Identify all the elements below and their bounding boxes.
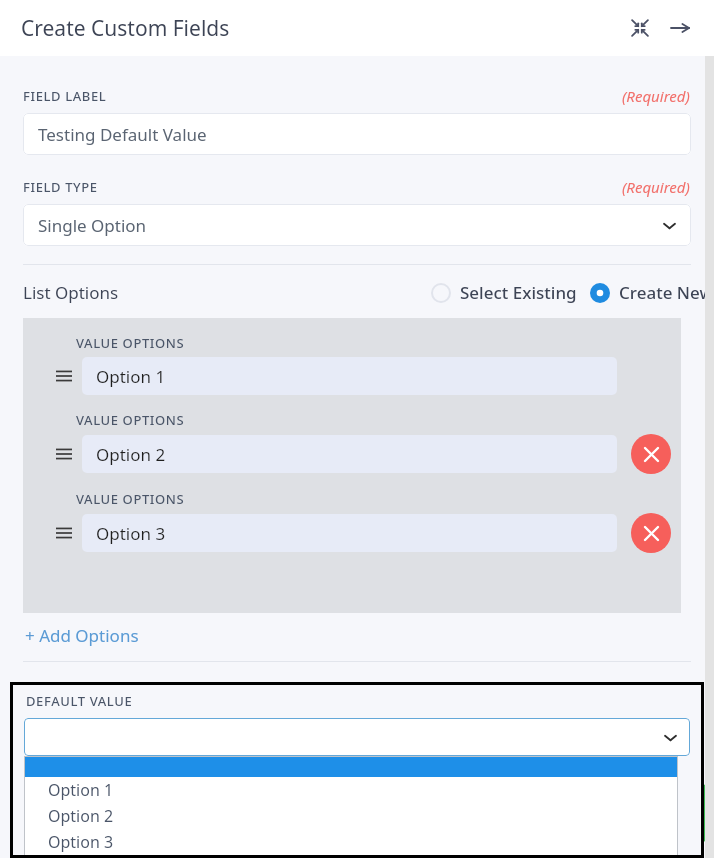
staticText: Option 1 <box>48 779 114 801</box>
staticText: Option 3 <box>96 522 166 545</box>
button[interactable]: Option 2 <box>82 435 617 473</box>
button[interactable]: Option 3 <box>24 829 678 855</box>
button[interactable]: Option 1 <box>24 777 678 803</box>
staticText: Option 2 <box>48 805 114 827</box>
staticText: Select Existing <box>460 281 577 304</box>
button[interactable]: Reorder <box>52 364 76 388</box>
staticText: VALUE OPTIONS <box>76 490 185 508</box>
button[interactable]: Single Option <box>23 204 691 246</box>
button[interactable]: Testing Default Value <box>23 113 691 155</box>
staticText: FIELD TYPE <box>23 178 98 196</box>
button[interactable]: Delete option <box>631 513 671 553</box>
staticText: Create New <box>619 281 714 304</box>
staticText: Create Custom Fields <box>21 14 230 43</box>
button[interactable]: Next <box>662 10 698 46</box>
staticText: VALUE OPTIONS <box>76 334 185 352</box>
button[interactable]: Chat support <box>658 781 714 845</box>
button[interactable]: Option 2 <box>24 803 678 829</box>
staticText: Option 1 <box>96 365 166 388</box>
button[interactable]: + Add Options <box>25 624 139 647</box>
staticText: FIELD LABEL <box>23 87 107 105</box>
button[interactable]: Option 3 <box>82 514 617 552</box>
button[interactable]: Collapse <box>622 10 658 46</box>
button[interactable] <box>24 718 690 756</box>
button[interactable]: Create New <box>590 281 714 304</box>
staticText: VALUE OPTIONS <box>76 411 185 429</box>
staticText: Option 2 <box>96 443 166 466</box>
button[interactable] <box>24 756 678 777</box>
staticText: DEFAULT VALUE <box>26 692 133 710</box>
staticText: (Required) <box>622 86 690 106</box>
button[interactable]: Delete option <box>631 434 671 474</box>
staticText: Single Option <box>38 214 147 237</box>
staticText: + Add Options <box>25 624 139 647</box>
button[interactable]: Reorder <box>52 521 76 545</box>
button[interactable]: Option 1 <box>82 357 617 395</box>
staticText: Option 3 <box>48 831 114 853</box>
button[interactable]: Select Existing <box>431 281 577 304</box>
button[interactable]: Reorder <box>52 442 76 466</box>
staticText: Testing Default Value <box>38 123 207 146</box>
staticText: List Options <box>23 281 119 304</box>
staticText: (Required) <box>622 177 690 197</box>
